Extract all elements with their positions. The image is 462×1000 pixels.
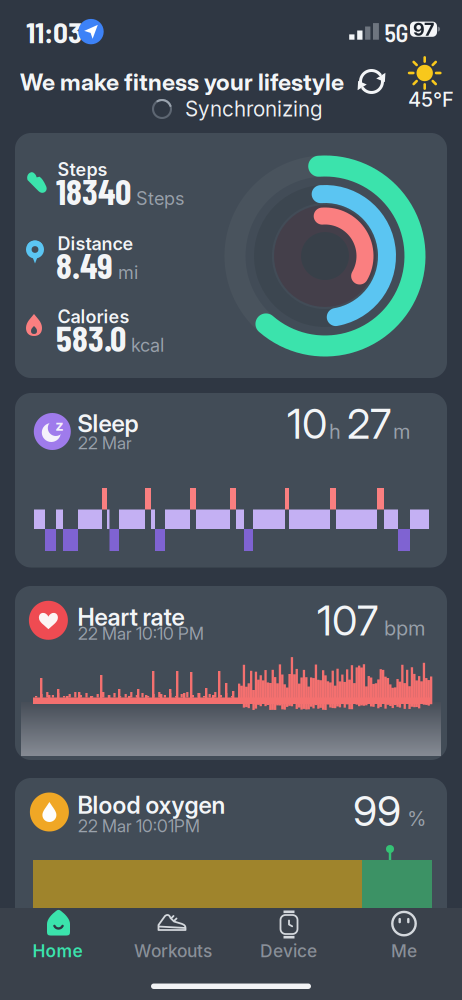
button[interactable]: Sleep bbox=[15, 393, 447, 567]
staticText: 18340 bbox=[56, 169, 131, 212]
button[interactable]: Heart rate bbox=[15, 586, 447, 760]
staticText: 97 bbox=[413, 18, 434, 40]
staticText: 22 Mar bbox=[78, 432, 132, 453]
staticText: Sleep bbox=[77, 409, 138, 438]
staticText: 22 Mar 10:01PM bbox=[78, 815, 200, 836]
staticText: 5G bbox=[384, 18, 408, 47]
staticText: Steps bbox=[57, 158, 107, 180]
staticText: Home bbox=[32, 940, 82, 961]
staticText: Synchronizing bbox=[185, 96, 323, 121]
staticText: 45°F bbox=[408, 87, 454, 112]
staticText: Calories bbox=[57, 306, 129, 328]
staticText: 27 bbox=[347, 399, 391, 449]
staticText: 10 bbox=[287, 399, 327, 449]
staticText: 22 Mar 10:10 PM bbox=[78, 623, 204, 644]
staticText: Heart rate bbox=[77, 602, 184, 631]
staticText: z bbox=[55, 417, 63, 434]
staticText: 107 bbox=[317, 595, 378, 645]
staticText: m bbox=[393, 419, 410, 443]
staticText: We make fitness your lifestyle bbox=[20, 68, 344, 96]
button[interactable]: Activity bbox=[15, 133, 447, 378]
staticText: 583.0 bbox=[56, 316, 126, 359]
button[interactable]: Blood oxygen bbox=[15, 778, 447, 908]
staticText: Steps bbox=[136, 188, 185, 209]
button[interactable]: Weather bbox=[402, 54, 448, 108]
staticText: mi bbox=[118, 261, 138, 283]
staticText: h bbox=[329, 419, 341, 443]
staticText: Me bbox=[391, 940, 417, 961]
staticText: 11:03 bbox=[26, 14, 82, 49]
button[interactable]: Sync bbox=[350, 60, 392, 102]
staticText: Blood oxygen bbox=[77, 790, 225, 819]
button[interactable]: Me bbox=[346, 908, 461, 1000]
staticText: Device bbox=[260, 940, 317, 961]
staticText: 99 bbox=[353, 786, 401, 836]
staticText: % bbox=[407, 807, 426, 831]
staticText: bpm bbox=[384, 616, 425, 640]
staticText: 8.49 bbox=[56, 243, 113, 286]
button[interactable]: Device bbox=[231, 908, 346, 1000]
staticText: Distance bbox=[57, 233, 133, 255]
button[interactable]: Workouts bbox=[115, 908, 230, 1000]
staticText: kcal bbox=[131, 334, 164, 356]
button[interactable]: Home bbox=[0, 908, 115, 1000]
staticText: Workouts bbox=[134, 940, 212, 961]
